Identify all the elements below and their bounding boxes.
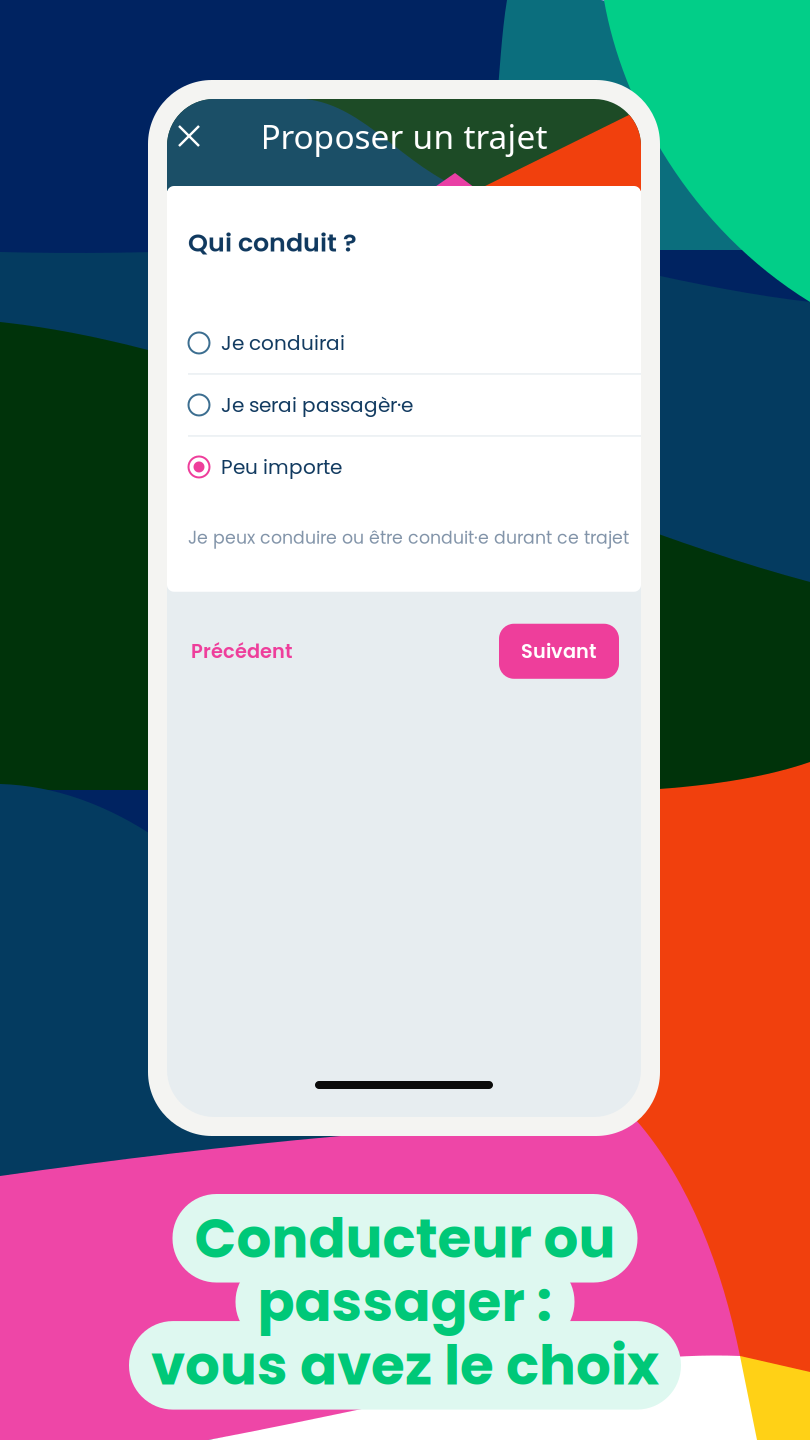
button[interactable]: Fermer <box>167 114 211 158</box>
staticText: Conducteur ou <box>194 1200 615 1276</box>
staticText: passager : <box>257 1263 552 1340</box>
staticText: passager : <box>257 1263 552 1340</box>
staticText: Suivant <box>521 638 597 665</box>
button[interactable]: Suivant <box>499 624 619 679</box>
staticText: Peu importe <box>221 453 342 481</box>
staticText: Je peux conduire ou être conduit·e duran… <box>188 525 629 550</box>
staticText: Qui conduit ? <box>188 225 357 260</box>
button[interactable]: Peu importe <box>167 436 641 497</box>
staticText: Proposer un trajet <box>260 114 547 158</box>
staticText: vous avez le choix <box>151 1327 659 1404</box>
button[interactable]: Je serai passagèr·e <box>167 374 641 436</box>
staticText: Je serai passagèr·e <box>221 391 413 419</box>
button[interactable]: Précédent <box>189 624 295 679</box>
button[interactable]: Je conduirai <box>167 312 641 374</box>
staticText: Conducteur ou <box>194 1200 615 1276</box>
staticText: vous avez le choix <box>151 1327 659 1404</box>
staticText: Je conduirai <box>221 329 345 357</box>
staticText: Précédent <box>191 638 293 665</box>
